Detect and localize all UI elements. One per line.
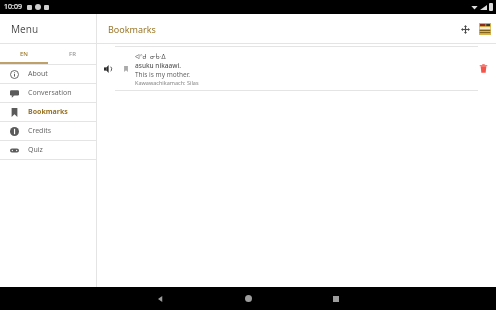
staticText: asuku nikaawi. bbox=[135, 61, 182, 70]
button[interactable]: Home bbox=[236, 287, 260, 310]
staticText: Menu bbox=[11, 22, 39, 36]
button[interactable]: Recent apps bbox=[324, 287, 348, 310]
button[interactable]: Play audio bbox=[97, 47, 119, 90]
button[interactable]: Language bbox=[478, 22, 492, 36]
button[interactable]: Back bbox=[148, 287, 172, 310]
staticText: Bookmarks bbox=[28, 107, 68, 117]
staticText: Credits bbox=[28, 126, 52, 136]
button[interactable]: FR bbox=[48, 44, 96, 64]
staticText: Conversation bbox=[28, 88, 72, 98]
staticText: Kawawachikamach: Silas bbox=[135, 79, 199, 86]
staticText: Bookmarks bbox=[108, 23, 156, 35]
staticText: ᐊᐢᑯ ᓂᑳᐧᐃ bbox=[135, 52, 166, 61]
button[interactable]: Play audio bbox=[97, 47, 496, 90]
staticText: EN bbox=[20, 50, 28, 58]
button[interactable]: Delete bookmark bbox=[470, 47, 496, 90]
staticText: FR bbox=[69, 50, 76, 58]
button[interactable]: Credits bbox=[0, 122, 96, 140]
button[interactable]: Move bbox=[458, 22, 472, 36]
button[interactable]: Quiz bbox=[0, 141, 96, 159]
staticText: 10:09 bbox=[4, 2, 22, 12]
button[interactable]: EN bbox=[0, 44, 48, 64]
button[interactable]: About bbox=[0, 65, 96, 83]
button[interactable]: Bookmarks bbox=[0, 103, 96, 121]
staticText: About bbox=[28, 69, 48, 79]
staticText: This is my mother. bbox=[135, 70, 191, 79]
button[interactable]: Conversation bbox=[0, 84, 96, 102]
staticText: Quiz bbox=[28, 145, 43, 155]
button[interactable]: Bookmark bbox=[119, 47, 133, 90]
